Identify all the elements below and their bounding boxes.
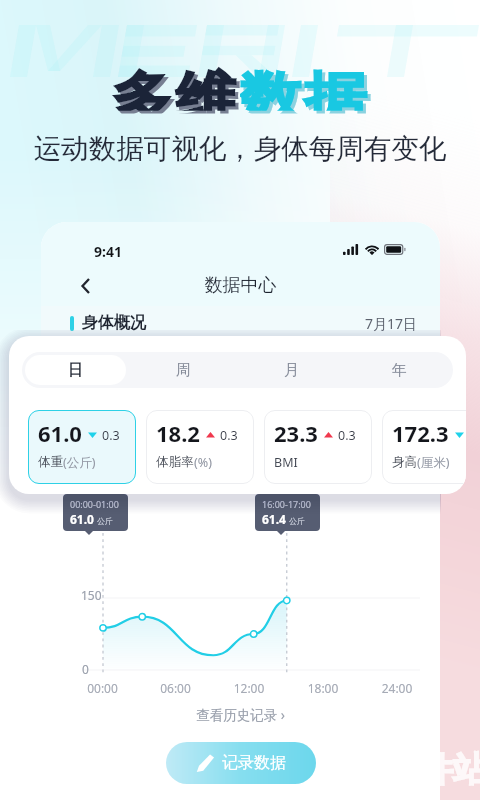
staticText: 23.3 bbox=[274, 418, 318, 448]
staticText: 0 bbox=[82, 661, 89, 677]
staticText: .com bbox=[421, 789, 476, 800]
button[interactable]: 日 bbox=[25, 355, 126, 385]
staticText: 查看历史记录 › bbox=[41, 706, 440, 724]
staticText: (公斤) bbox=[63, 454, 96, 471]
staticText: 0.3 bbox=[338, 427, 356, 444]
staticText: 150 bbox=[81, 587, 102, 603]
staticText: 数据 bbox=[243, 67, 372, 113]
staticText: 0.3 bbox=[102, 427, 120, 444]
staticText: BMI bbox=[274, 454, 298, 471]
staticText: 记录数据 bbox=[222, 753, 286, 773]
staticText: 日 bbox=[68, 361, 83, 380]
staticText: 体脂率 bbox=[156, 454, 194, 470]
staticText: 多维 bbox=[114, 67, 243, 113]
staticText: 61.0 bbox=[38, 418, 82, 448]
staticText: 数据中心 bbox=[41, 274, 440, 297]
staticText: 体重 bbox=[38, 454, 63, 470]
staticText: 周 bbox=[176, 361, 191, 380]
staticText: 身体概况 bbox=[82, 313, 146, 333]
staticText: 月 bbox=[284, 361, 299, 380]
staticText: (%) bbox=[194, 454, 212, 471]
button[interactable]: 周 bbox=[132, 355, 234, 385]
button[interactable]: 年 bbox=[348, 355, 450, 385]
staticText: 00:00-01:00 bbox=[70, 498, 119, 510]
staticText: 00:00 bbox=[66, 680, 139, 696]
button[interactable]: 18.2 bbox=[146, 410, 254, 484]
button[interactable]: 61.0 bbox=[28, 410, 136, 484]
staticText: 多维 bbox=[111, 64, 240, 111]
staticText: 0.3 bbox=[220, 427, 238, 444]
staticText: 12:00 bbox=[212, 680, 286, 696]
staticText: 24:00 bbox=[360, 680, 434, 696]
staticText: 61.0 bbox=[70, 511, 94, 527]
staticText: 18.2 bbox=[156, 418, 200, 448]
button[interactable]: 查看历史记录 › bbox=[41, 706, 440, 728]
button[interactable]: 172.3 bbox=[382, 410, 466, 484]
staticText: 年 bbox=[392, 361, 407, 380]
staticText: 数据 bbox=[240, 64, 369, 111]
staticText: 件站 bbox=[419, 748, 480, 791]
staticText: 16:00-17:00 bbox=[262, 498, 311, 510]
button[interactable]: 23.3 bbox=[264, 410, 372, 484]
staticText: 9:41 bbox=[94, 242, 122, 261]
staticText: (厘米) bbox=[417, 454, 450, 471]
button[interactable]: 月 bbox=[240, 355, 342, 385]
button[interactable]: Back bbox=[71, 272, 99, 300]
staticText: 06:00 bbox=[139, 680, 212, 696]
staticText: 172.3 bbox=[392, 418, 449, 448]
staticText: 7月17日 bbox=[365, 314, 418, 333]
staticText: 公斤 bbox=[97, 516, 113, 526]
staticText: 61.4 bbox=[262, 511, 286, 527]
staticText: 公斤 bbox=[289, 516, 305, 526]
staticText: 运动数据可视化，身体每周有变化 bbox=[0, 132, 480, 167]
staticText: 身高 bbox=[392, 454, 417, 470]
staticText: 18:00 bbox=[286, 680, 360, 696]
button[interactable]: 记录数据 bbox=[166, 742, 316, 784]
